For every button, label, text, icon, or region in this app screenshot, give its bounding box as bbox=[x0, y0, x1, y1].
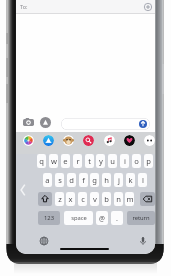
staticText: w bbox=[51, 156, 57, 166]
staticText: k bbox=[128, 175, 133, 185]
button[interactable]: x bbox=[66, 192, 75, 206]
button[interactable]: Music bbox=[104, 135, 115, 146]
button[interactable]: c bbox=[78, 192, 87, 206]
staticText: n bbox=[116, 194, 121, 204]
button[interactable]: Change keyboard bbox=[38, 235, 50, 247]
staticText: j bbox=[118, 175, 120, 185]
staticText: s bbox=[58, 175, 62, 185]
staticText: a bbox=[45, 175, 50, 185]
staticText: d bbox=[69, 175, 74, 185]
button[interactable]: Add contact bbox=[143, 2, 153, 12]
staticText: @ bbox=[99, 214, 105, 223]
button[interactable]: iMessage text field bbox=[61, 118, 150, 130]
button[interactable]: Camera bbox=[23, 117, 34, 128]
staticText: r bbox=[76, 156, 80, 166]
button[interactable]: Send bbox=[139, 120, 147, 128]
button[interactable]: App Store bbox=[40, 117, 51, 128]
staticText: q bbox=[39, 156, 44, 166]
button[interactable]: s bbox=[55, 173, 64, 187]
staticText: To: bbox=[20, 3, 28, 10]
button[interactable]: t bbox=[85, 154, 94, 168]
button[interactable]: Dictation bbox=[137, 235, 149, 247]
staticText: v bbox=[93, 194, 97, 204]
button[interactable]: More apps bbox=[144, 135, 155, 146]
staticText: t bbox=[88, 156, 91, 166]
button[interactable]: i bbox=[120, 154, 129, 168]
button[interactable]: f bbox=[79, 173, 88, 187]
button[interactable]: h bbox=[102, 173, 111, 187]
button[interactable]: . bbox=[111, 211, 123, 225]
button[interactable]: p bbox=[144, 154, 153, 168]
button[interactable]: To: bbox=[16, 0, 155, 13]
staticText: o bbox=[134, 156, 139, 166]
button[interactable]: m bbox=[125, 192, 134, 206]
staticText: b bbox=[104, 194, 109, 204]
staticText: 123 bbox=[44, 214, 54, 222]
button[interactable]: Digital Touch bbox=[124, 135, 135, 146]
button[interactable]: Photos bbox=[23, 135, 34, 146]
button[interactable]: Expand keyboard bbox=[17, 184, 29, 196]
staticText: h bbox=[104, 175, 109, 185]
button[interactable]: l bbox=[138, 173, 147, 187]
button[interactable]: return bbox=[127, 211, 155, 225]
button[interactable]: j bbox=[114, 173, 123, 187]
staticText: y bbox=[99, 156, 103, 166]
button[interactable]: b bbox=[102, 192, 111, 206]
button[interactable]: o bbox=[132, 154, 141, 168]
button[interactable]: u bbox=[108, 154, 117, 168]
button[interactable]: g bbox=[90, 173, 99, 187]
button[interactable]: 123 bbox=[38, 211, 60, 225]
button[interactable]: q bbox=[37, 154, 46, 168]
button[interactable]: n bbox=[114, 192, 123, 206]
button[interactable]: Images bbox=[83, 135, 94, 146]
staticText: return bbox=[132, 214, 150, 222]
staticText: p bbox=[146, 156, 151, 166]
staticText: x bbox=[68, 194, 73, 204]
button[interactable]: App Store bbox=[43, 135, 54, 146]
button[interactable]: y bbox=[96, 154, 105, 168]
staticText: e bbox=[63, 156, 68, 166]
staticText: z bbox=[58, 194, 62, 204]
staticText: c bbox=[81, 194, 85, 204]
staticText: m bbox=[126, 194, 134, 204]
staticText: f bbox=[82, 175, 85, 185]
button[interactable]: k bbox=[126, 173, 135, 187]
button[interactable]: Memoji bbox=[63, 135, 74, 146]
button[interactable]: a bbox=[43, 173, 52, 187]
staticText: . bbox=[116, 213, 118, 223]
staticText: l bbox=[142, 175, 144, 185]
button[interactable]: @ bbox=[96, 211, 108, 225]
button[interactable]: Shift bbox=[38, 192, 52, 206]
staticText: i bbox=[124, 156, 126, 166]
button[interactable]: v bbox=[90, 192, 99, 206]
staticText: g bbox=[92, 175, 97, 185]
button[interactable]: d bbox=[67, 173, 76, 187]
button[interactable]: Backspace bbox=[140, 192, 155, 206]
button[interactable]: space bbox=[64, 211, 93, 225]
button[interactable]: e bbox=[61, 154, 70, 168]
button[interactable]: z bbox=[55, 192, 64, 206]
button[interactable]: r bbox=[73, 154, 82, 168]
staticText: space bbox=[71, 214, 87, 222]
button[interactable]: w bbox=[49, 154, 58, 168]
staticText: u bbox=[110, 156, 115, 166]
